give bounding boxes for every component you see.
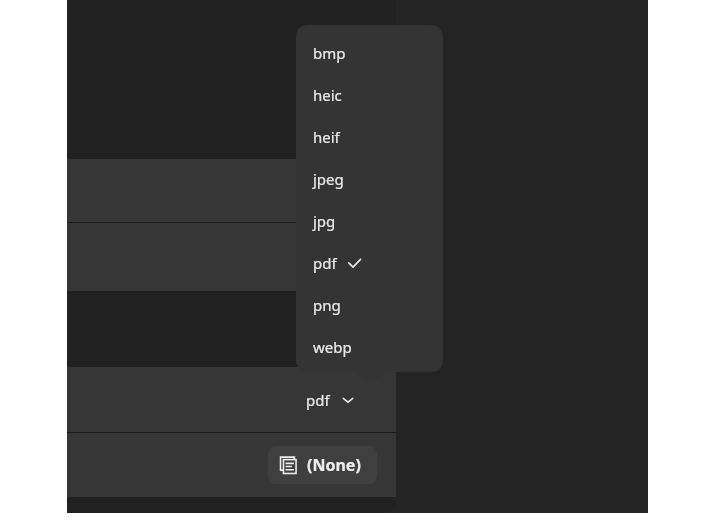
button[interactable]: Duplicate document bbox=[268, 446, 377, 484]
staticText: png bbox=[313, 295, 341, 315]
button[interactable]: bmp bbox=[296, 33, 443, 73]
button[interactable]: jpeg bbox=[296, 159, 443, 199]
button[interactable]: webp bbox=[296, 327, 443, 367]
button[interactable]: jpg bbox=[296, 201, 443, 241]
staticText: bmp bbox=[313, 43, 346, 63]
button[interactable]: pdf bbox=[306, 383, 355, 417]
staticText: heic bbox=[313, 85, 342, 105]
button[interactable]: heic bbox=[296, 75, 443, 115]
staticText: jpg bbox=[313, 211, 336, 231]
staticText: heif bbox=[313, 127, 340, 147]
other: Duplicate document bbox=[278, 455, 299, 476]
staticText: pdf bbox=[313, 253, 337, 273]
staticText: webp bbox=[313, 337, 352, 357]
button[interactable]: pdf bbox=[296, 243, 443, 283]
button[interactable]: png bbox=[296, 285, 443, 325]
staticText: pdf bbox=[306, 390, 330, 410]
button[interactable]: heif bbox=[296, 117, 443, 157]
staticText: (None) bbox=[307, 454, 361, 476]
staticText: jpeg bbox=[313, 169, 344, 189]
